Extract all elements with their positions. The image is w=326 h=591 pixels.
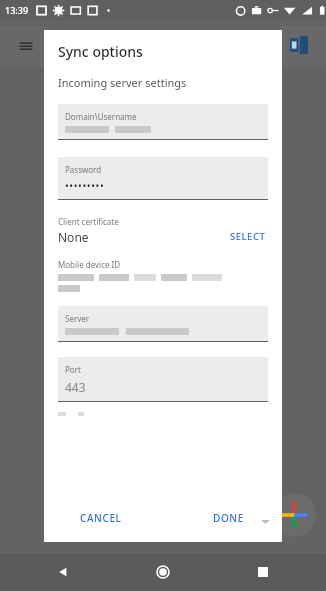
other: Scroll down xyxy=(261,517,270,526)
staticText: Port xyxy=(65,364,81,375)
staticText: ••••••••• xyxy=(65,179,105,193)
staticText: Domain\Username xyxy=(65,111,137,122)
button[interactable]: Home xyxy=(150,559,176,585)
button[interactable]: Recent apps xyxy=(250,559,276,585)
button[interactable]: Compose xyxy=(272,493,316,537)
staticText: 13:39 xyxy=(5,4,29,16)
button[interactable]: Mobile device ID xyxy=(58,259,268,292)
button[interactable]: Domain\Username xyxy=(58,104,268,140)
staticText: Sync options xyxy=(58,42,143,61)
button[interactable]: Server xyxy=(58,306,268,342)
staticText: Client certificate xyxy=(58,216,119,227)
button[interactable]: Outlook xyxy=(290,36,308,54)
button[interactable]: Port xyxy=(58,357,268,402)
button[interactable]: SELECT xyxy=(228,228,268,245)
staticText: SELECT xyxy=(230,230,266,243)
staticText: Incoming server settings xyxy=(58,75,187,90)
staticText: DONE xyxy=(213,511,244,525)
button[interactable]: Back xyxy=(50,559,76,585)
staticText: 443 xyxy=(65,379,86,395)
button[interactable]: Open navigation menu xyxy=(18,38,34,54)
staticText: Mobile device ID xyxy=(58,259,121,270)
button[interactable]: DONE xyxy=(207,506,250,530)
staticText: Password xyxy=(65,164,102,175)
staticText: CANCEL xyxy=(80,511,122,525)
button[interactable]: Password xyxy=(58,157,268,200)
staticText: None xyxy=(58,229,89,245)
staticText: Server xyxy=(65,313,90,324)
button[interactable]: CANCEL xyxy=(74,506,128,530)
